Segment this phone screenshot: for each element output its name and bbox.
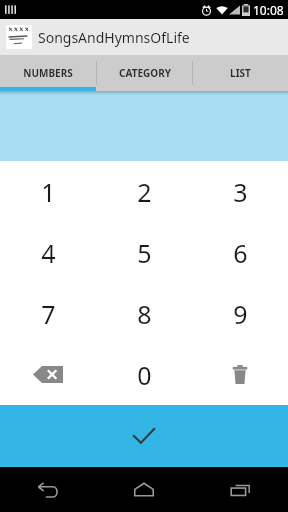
staticText: 5 <box>137 236 152 270</box>
button[interactable]: NUMBERS <box>0 55 96 91</box>
button[interactable]: 3 <box>192 161 288 222</box>
staticText: 9 <box>233 297 248 331</box>
button[interactable]: Home <box>96 467 192 512</box>
button[interactable]: 5 <box>96 222 192 283</box>
button[interactable]: 0 <box>96 344 192 405</box>
staticText: 7 <box>41 297 56 331</box>
staticText: 4 <box>41 236 56 270</box>
staticText: LIST <box>230 66 251 80</box>
button[interactable]: Clear <box>192 344 288 405</box>
staticText: SongsAndHymnsOfLife <box>38 28 190 47</box>
staticText: 10:08 <box>253 2 284 18</box>
button[interactable]: Backspace <box>0 344 96 405</box>
staticText: 8 <box>137 297 152 331</box>
button[interactable]: LIST <box>193 55 288 91</box>
staticText: 3 <box>233 175 248 209</box>
button[interactable]: 2 <box>96 161 192 222</box>
button[interactable]: Recent apps <box>192 467 288 512</box>
button[interactable]: 9 <box>192 283 288 344</box>
staticText: 0 <box>137 358 152 392</box>
staticText: 2 <box>137 175 152 209</box>
staticText: 1 <box>41 175 56 209</box>
button[interactable]: CATEGORY <box>97 55 192 91</box>
staticText: NUMBERS <box>23 66 73 80</box>
button[interactable]: Back <box>0 467 96 512</box>
staticText: 6 <box>233 236 248 270</box>
button[interactable]: 7 <box>0 283 96 344</box>
button[interactable]: 4 <box>0 222 96 283</box>
button[interactable]: 6 <box>192 222 288 283</box>
staticText: CATEGORY <box>119 66 171 80</box>
button[interactable]: Confirm <box>0 405 288 467</box>
button[interactable]: 8 <box>96 283 192 344</box>
button[interactable]: 1 <box>0 161 96 222</box>
